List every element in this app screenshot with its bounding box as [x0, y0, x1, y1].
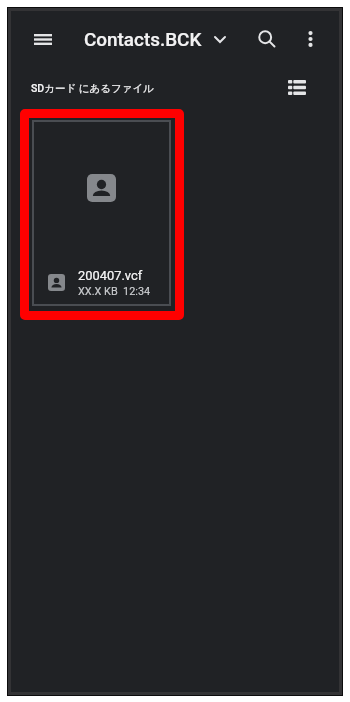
staticText: Contacts.BCK — [84, 28, 202, 50]
button[interactable]: 200407.vcf — [32, 120, 171, 306]
button[interactable]: Switch to list view — [279, 69, 315, 105]
button[interactable]: Navigation menu — [23, 19, 63, 59]
button[interactable]: Change storage — [206, 25, 234, 53]
staticText: SDカード にあるファイル — [31, 82, 155, 95]
button[interactable]: More options — [290, 19, 330, 59]
button[interactable]: Search — [246, 18, 288, 60]
staticText: XX.X KB 12:34 — [78, 285, 151, 298]
staticText: 200407.vcf — [78, 268, 143, 283]
